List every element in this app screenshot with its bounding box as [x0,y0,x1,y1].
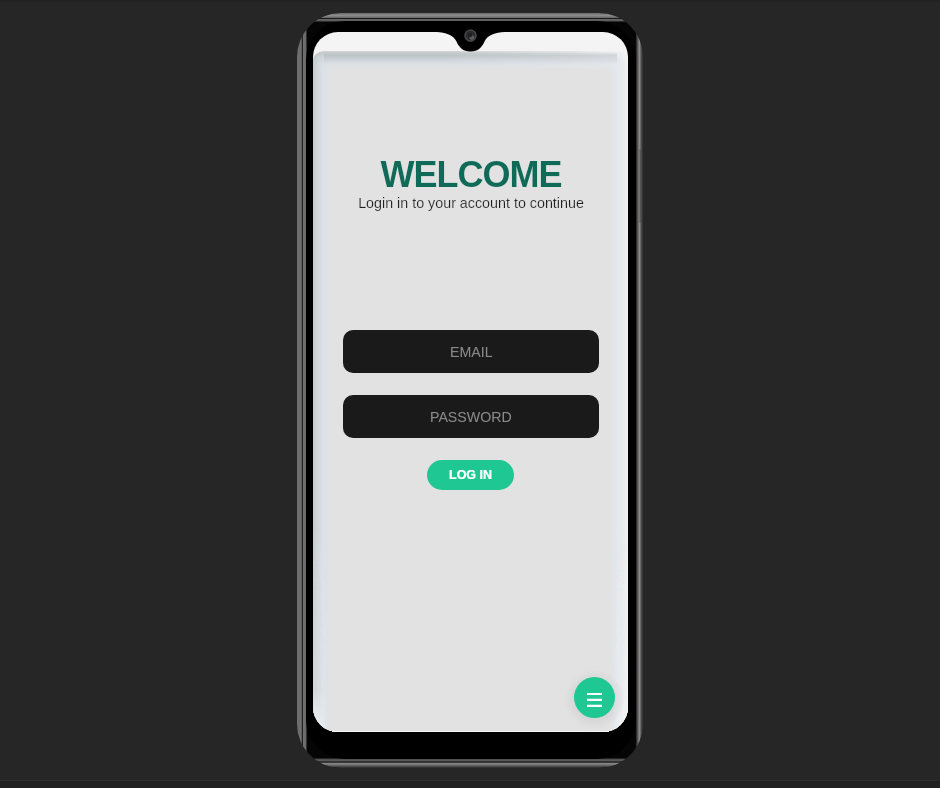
button[interactable]: LOG IN [427,460,514,490]
staticText: WELCOME [380,154,562,194]
staticText: LOG IN [449,468,493,482]
staticText: EMAIL [450,344,493,360]
button[interactable]: Open menu [574,677,615,718]
button[interactable]: PASSWORD [343,395,599,438]
staticText: Login in to your account to continue [358,195,584,211]
staticText: PASSWORD [430,409,512,425]
button[interactable]: EMAIL [343,330,599,373]
